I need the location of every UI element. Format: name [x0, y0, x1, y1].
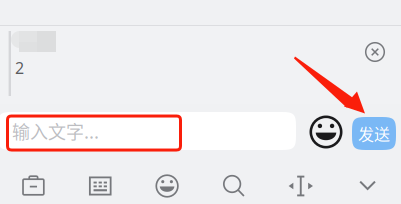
button[interactable]: Collapse	[334, 160, 401, 204]
button[interactable]: 发送	[352, 117, 396, 150]
button[interactable]: 输入文字...	[0, 112, 296, 150]
button[interactable]: Attachments	[0, 160, 67, 204]
button[interactable]: Stickers	[134, 160, 200, 204]
button[interactable]: Move cursor	[267, 160, 334, 204]
button[interactable]: Search	[200, 160, 267, 204]
staticText: 输入文字...	[12, 118, 99, 144]
button[interactable]: Emoji	[304, 110, 348, 154]
button[interactable]: Keyboard	[67, 160, 134, 204]
button[interactable]: Close	[354, 31, 396, 73]
staticText: 2	[15, 57, 24, 79]
staticText: 发送	[358, 122, 390, 145]
